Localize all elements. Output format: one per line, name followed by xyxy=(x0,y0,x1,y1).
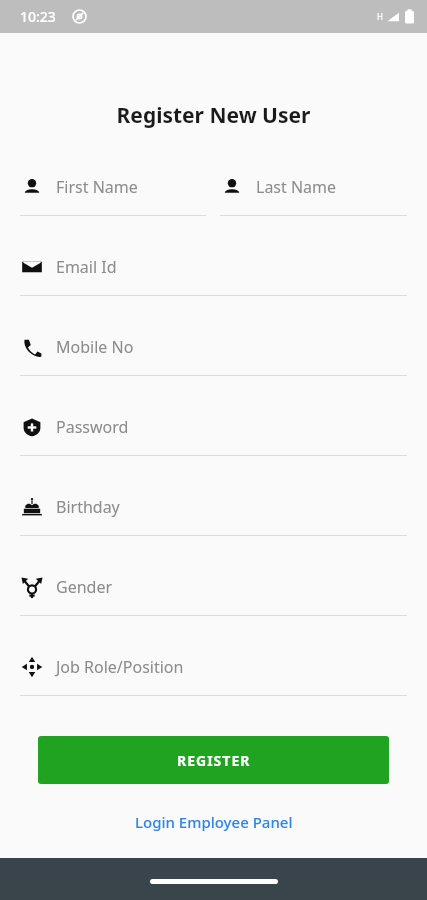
other: Person xyxy=(220,175,244,199)
other: Password xyxy=(20,415,44,439)
other: Email xyxy=(20,255,44,279)
staticText: REGISTER xyxy=(177,751,251,770)
other: Phone xyxy=(20,335,44,359)
button[interactable]: Password xyxy=(20,398,407,478)
button[interactable]: Email xyxy=(20,238,407,318)
staticText: Job Role/Position xyxy=(56,656,184,678)
staticText: Mobile No xyxy=(56,336,134,358)
staticText: Login Employee Panel xyxy=(135,812,293,832)
staticText: 10:23 xyxy=(20,7,56,26)
other: Gender xyxy=(20,575,44,599)
other: Person xyxy=(20,175,44,199)
staticText: Password xyxy=(56,416,129,438)
other: Job role xyxy=(20,655,44,679)
staticText: Last Name xyxy=(256,176,337,198)
staticText: First Name xyxy=(56,176,138,198)
other: Birthday xyxy=(20,495,44,519)
button[interactable]: Job role xyxy=(20,638,407,718)
button[interactable]: Login Employee Panel xyxy=(100,806,327,838)
button[interactable]: Gender xyxy=(20,558,407,638)
button[interactable]: Birthday xyxy=(20,478,407,558)
staticText: Birthday xyxy=(56,496,120,518)
staticText: Gender xyxy=(56,576,113,598)
staticText: Register New User xyxy=(0,101,427,130)
button[interactable]: Person xyxy=(20,158,206,238)
staticText: Email Id xyxy=(56,256,117,278)
other: Do not disturb xyxy=(72,9,87,24)
button[interactable]: Phone xyxy=(20,318,407,398)
button[interactable]: REGISTER xyxy=(38,736,389,784)
staticText: H xyxy=(377,11,383,22)
button[interactable]: Person xyxy=(220,158,407,238)
